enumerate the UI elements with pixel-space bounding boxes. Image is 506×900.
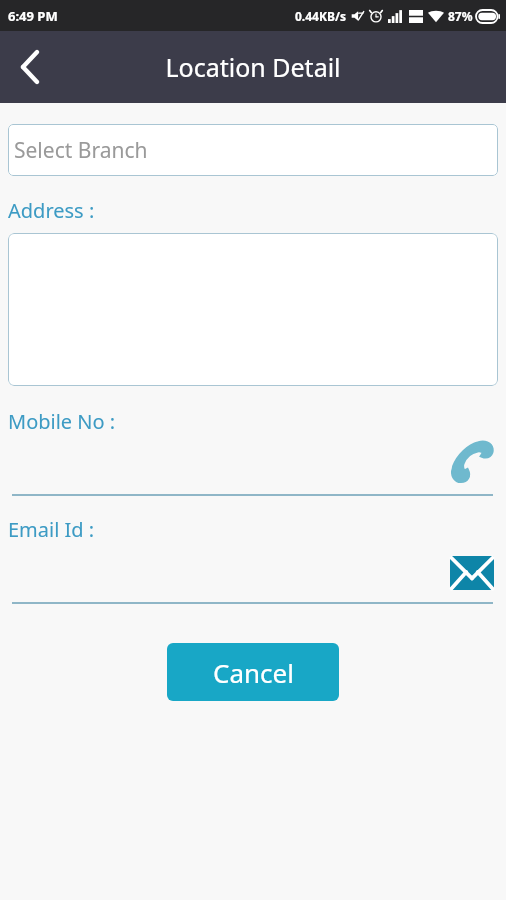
staticText: 87% [448,8,473,24]
staticText: 0.44KB/s [295,8,346,24]
staticText: Cancel [213,655,294,690]
button[interactable]: Call [8,435,498,496]
button[interactable]: Cancel [167,643,339,701]
staticText: 6:49 PM [8,7,58,25]
staticText: Select Branch [14,136,148,165]
button[interactable]: Select Branch [8,124,498,176]
staticText: Email Id : [8,516,95,543]
button[interactable]: Email [8,543,498,604]
staticText: Mobile No : [8,408,116,435]
button[interactable]: Back [0,37,60,97]
button[interactable]: Email [446,547,498,599]
staticText: Address : [8,197,95,224]
button[interactable] [8,233,498,386]
staticText: Location Detail [165,50,341,84]
button[interactable]: Call [446,438,498,490]
